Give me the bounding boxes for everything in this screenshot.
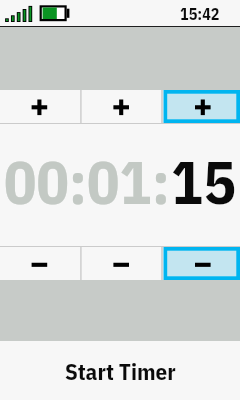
button[interactable]: Increase [162, 90, 240, 123]
button[interactable]: Decrease [81, 247, 162, 280]
button[interactable]: Decrease [0, 247, 81, 280]
button[interactable]: Decrease [162, 247, 240, 280]
button[interactable]: Start Timer [0, 341, 240, 400]
staticText: 15:42 [180, 4, 220, 25]
button[interactable]: Increase [81, 90, 162, 123]
staticText: 00:01: [4, 142, 171, 220]
button[interactable]: Increase [0, 90, 81, 123]
staticText: 15 [171, 142, 236, 220]
staticText: Start Timer [65, 356, 176, 386]
